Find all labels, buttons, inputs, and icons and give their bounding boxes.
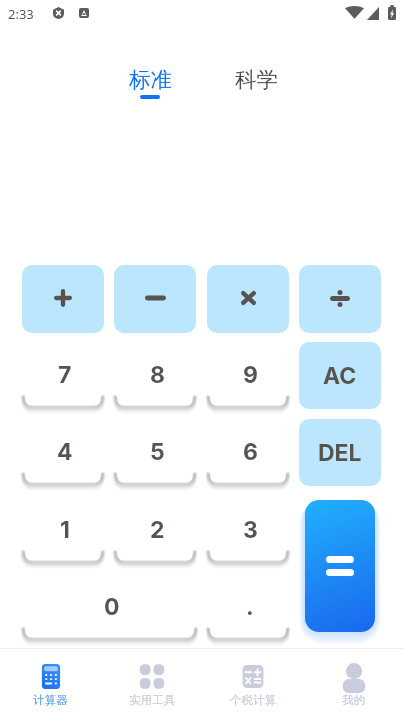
button[interactable]: 3: [207, 497, 289, 564]
button[interactable]: 2: [114, 497, 196, 564]
staticText: 标准: [129, 66, 172, 93]
button[interactable]: 科学: [226, 66, 286, 99]
button[interactable]: Equals: [305, 500, 375, 632]
staticText: .: [246, 593, 254, 621]
button[interactable]: +: [22, 265, 104, 333]
button[interactable]: DEL: [299, 419, 381, 486]
staticText: 科学: [235, 66, 278, 93]
staticText: 计算器: [33, 693, 68, 707]
staticText: AC: [323, 362, 357, 390]
staticText: DEL: [318, 439, 362, 467]
staticText: 8: [150, 361, 165, 389]
staticText: 5: [150, 438, 165, 466]
button[interactable]: .: [207, 574, 289, 641]
staticText: 实用工具: [129, 693, 175, 707]
button[interactable]: 0: [22, 574, 197, 641]
staticText: 1: [60, 516, 70, 544]
button[interactable]: /: [299, 265, 381, 333]
button[interactable]: 9: [207, 342, 289, 409]
button[interactable]: 4: [22, 419, 104, 486]
staticText: 3: [243, 516, 258, 544]
button[interactable]: 实用工具: [101, 649, 202, 720]
staticText: 7: [58, 361, 72, 389]
staticText: 9: [243, 361, 258, 389]
staticText: 我的: [342, 693, 365, 707]
button[interactable]: AC: [299, 342, 381, 409]
button[interactable]: 1: [22, 497, 104, 564]
staticText: 2: [150, 516, 165, 544]
button[interactable]: 5: [114, 419, 196, 486]
staticText: 个税计算: [230, 693, 276, 707]
button[interactable]: 计算器: [0, 649, 101, 720]
button[interactable]: -: [114, 265, 196, 333]
button[interactable]: 6: [207, 419, 289, 486]
button[interactable]: 个税计算: [202, 649, 303, 720]
button[interactable]: 8: [114, 342, 196, 409]
staticText: 6: [243, 438, 258, 466]
button[interactable]: *: [207, 265, 289, 333]
button[interactable]: 7: [22, 342, 104, 409]
button[interactable]: 标准: [120, 66, 180, 99]
staticText: 4: [57, 438, 73, 466]
staticText: 2:33: [8, 5, 34, 23]
button[interactable]: 我的: [303, 649, 404, 720]
staticText: 0: [104, 593, 120, 621]
